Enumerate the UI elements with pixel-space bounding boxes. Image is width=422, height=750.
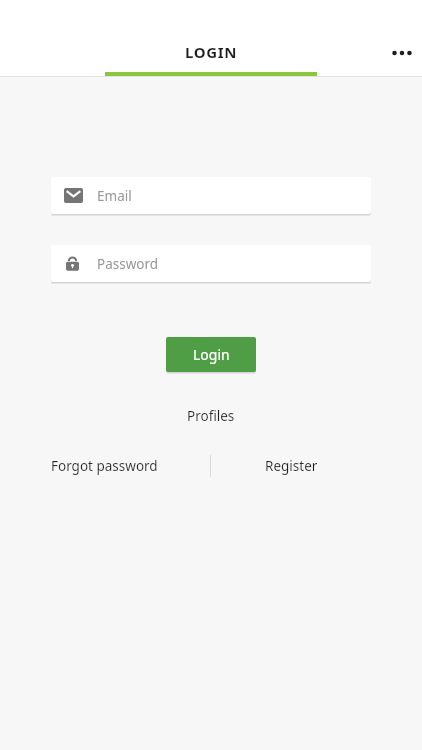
button[interactable]: Register bbox=[211, 451, 371, 481]
staticText: Email bbox=[97, 187, 132, 205]
staticText: Password bbox=[97, 255, 159, 273]
staticText: Register bbox=[265, 457, 318, 475]
button[interactable]: Forgot password bbox=[51, 451, 210, 481]
button[interactable]: Email bbox=[51, 177, 371, 214]
staticText: Forgot password bbox=[51, 457, 158, 475]
button[interactable]: More options bbox=[382, 33, 422, 73]
button[interactable]: Login bbox=[166, 337, 256, 372]
button[interactable]: Password bbox=[51, 245, 371, 282]
button[interactable]: Profiles bbox=[177, 403, 245, 429]
staticText: LOGIN bbox=[185, 42, 237, 62]
staticText: Profiles bbox=[187, 407, 235, 425]
staticText: Login bbox=[193, 345, 230, 364]
